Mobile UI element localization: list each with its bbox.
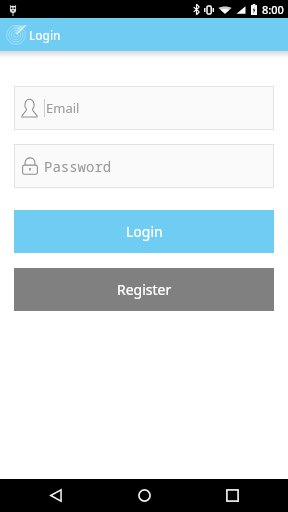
button[interactable]: Password bbox=[14, 144, 274, 188]
staticText: Register bbox=[117, 280, 172, 299]
staticText: Login bbox=[126, 222, 163, 241]
button[interactable]: Email bbox=[14, 86, 274, 130]
staticText: Email bbox=[46, 99, 80, 117]
staticText: Password bbox=[44, 157, 112, 176]
button[interactable]: Back bbox=[32, 479, 80, 512]
button[interactable]: Recent apps bbox=[208, 479, 256, 512]
button[interactable]: Home bbox=[120, 479, 168, 512]
button[interactable]: Login bbox=[14, 210, 274, 253]
staticText: 8:00 bbox=[262, 2, 284, 17]
staticText: Login bbox=[29, 27, 61, 43]
button[interactable]: Register bbox=[14, 268, 274, 311]
